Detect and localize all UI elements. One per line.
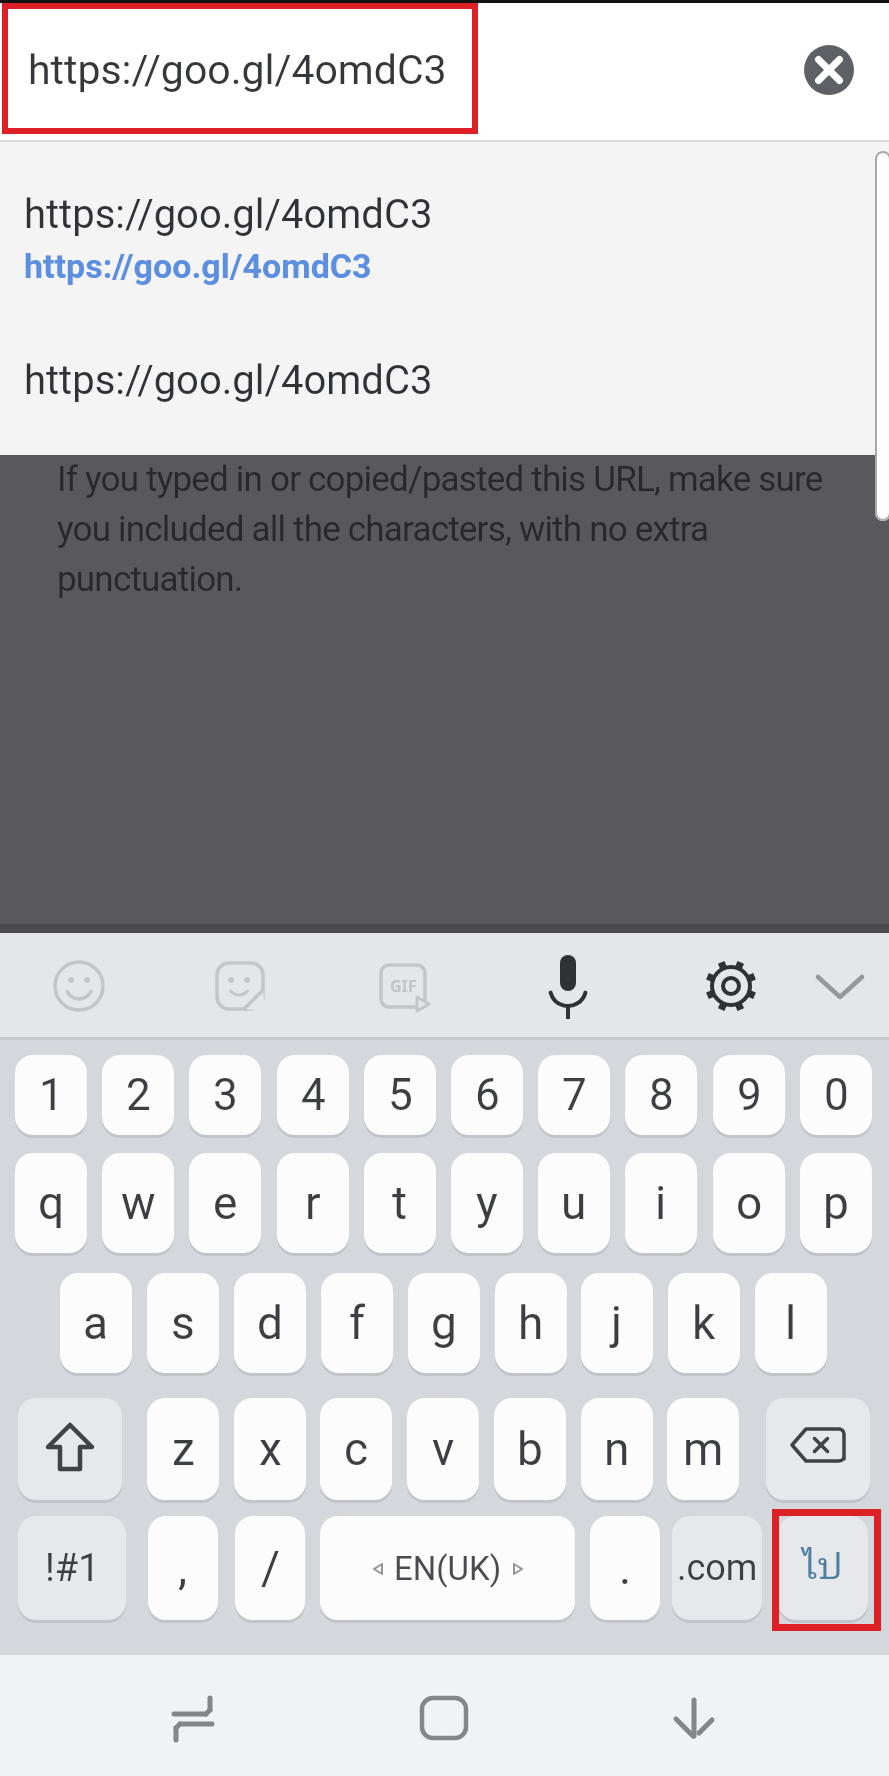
button[interactable]: j — [581, 1273, 653, 1373]
button[interactable]: p — [800, 1153, 872, 1253]
button[interactable]: 4 — [277, 1055, 349, 1135]
staticText: 9 — [737, 1069, 762, 1121]
staticText: https://goo.gl/4omdC3 — [28, 46, 447, 94]
staticText: f — [349, 1296, 365, 1350]
staticText: 3 — [213, 1069, 238, 1121]
button[interactable] — [156, 1676, 236, 1756]
button[interactable]: t — [364, 1153, 436, 1253]
button[interactable] — [691, 941, 771, 1031]
button[interactable]: 3 — [189, 1055, 261, 1135]
button[interactable]: f — [321, 1273, 393, 1373]
staticText: 1 — [39, 1069, 64, 1121]
button[interactable]: v — [407, 1398, 479, 1500]
button[interactable]: o — [713, 1153, 785, 1253]
button[interactable]: a — [60, 1273, 132, 1373]
button[interactable] — [39, 941, 119, 1031]
button[interactable]: k — [668, 1273, 740, 1373]
staticText: l — [785, 1296, 797, 1350]
staticText: a — [83, 1296, 109, 1350]
staticText: https://goo.gl/4omdC3 — [24, 357, 433, 404]
staticText: https://goo.gl/4omdC3 — [24, 191, 433, 238]
button[interactable]: m — [667, 1398, 739, 1500]
button[interactable] — [528, 941, 608, 1031]
staticText: you included all the characters, with no… — [57, 509, 709, 550]
button[interactable]: 6 — [451, 1055, 523, 1135]
staticText: c — [344, 1422, 369, 1476]
staticText: w — [121, 1176, 156, 1230]
button[interactable]: d — [234, 1273, 306, 1373]
staticText: 4 — [301, 1069, 326, 1121]
button[interactable] — [363, 941, 443, 1031]
staticText: x — [259, 1422, 282, 1476]
staticText: r — [305, 1176, 321, 1230]
button[interactable]: u — [538, 1153, 610, 1253]
button[interactable] — [766, 1398, 870, 1500]
button[interactable]: 2 — [102, 1055, 174, 1135]
staticText: .com — [677, 1547, 758, 1589]
staticText: u — [561, 1176, 587, 1230]
staticText: 8 — [649, 1069, 674, 1121]
button[interactable]: ไป — [778, 1516, 868, 1620]
staticText: n — [604, 1422, 630, 1476]
button[interactable]: . — [590, 1516, 660, 1620]
button[interactable]: !#1 — [18, 1516, 126, 1620]
staticText: d — [257, 1296, 283, 1350]
button[interactable]: c — [320, 1398, 392, 1500]
button[interactable]: n — [581, 1398, 653, 1500]
button[interactable]: , — [148, 1516, 218, 1620]
button[interactable]: 5 — [364, 1055, 436, 1135]
staticText: / — [261, 1541, 280, 1595]
button[interactable] — [404, 1676, 484, 1756]
button[interactable]: e — [189, 1153, 261, 1253]
button[interactable] — [804, 45, 854, 95]
staticText: t — [392, 1176, 408, 1230]
staticText: 0 — [824, 1069, 849, 1121]
button[interactable] — [18, 1398, 122, 1500]
staticText: s — [171, 1296, 195, 1350]
button[interactable]: q — [15, 1153, 87, 1253]
staticText: z — [172, 1422, 195, 1476]
button[interactable]: i — [625, 1153, 697, 1253]
staticText: h — [518, 1296, 544, 1350]
button[interactable]: s — [147, 1273, 219, 1373]
button[interactable]: z — [147, 1398, 219, 1500]
staticText: o — [736, 1176, 763, 1230]
staticText: q — [38, 1176, 65, 1230]
button[interactable]: 1 — [15, 1055, 87, 1135]
button[interactable]: 0 — [800, 1055, 872, 1135]
staticText: i — [655, 1176, 667, 1230]
button[interactable]: y — [451, 1153, 523, 1253]
button[interactable] — [654, 1676, 734, 1756]
button[interactable] — [800, 941, 880, 1031]
button[interactable]: b — [494, 1398, 566, 1500]
button[interactable]: EN(UK) — [320, 1516, 575, 1620]
staticText: 6 — [475, 1069, 500, 1121]
button[interactable]: g — [408, 1273, 480, 1373]
button[interactable] — [0, 150, 889, 305]
staticText: GIF — [390, 975, 417, 997]
button[interactable]: / — [235, 1516, 305, 1620]
staticText: !#1 — [45, 1546, 100, 1591]
staticText: , — [178, 1541, 188, 1595]
staticText: p — [823, 1176, 849, 1230]
button[interactable]: 9 — [713, 1055, 785, 1135]
button[interactable]: .com — [672, 1516, 762, 1620]
button[interactable]: 7 — [538, 1055, 610, 1135]
staticText: 5 — [388, 1069, 413, 1121]
staticText: y — [476, 1176, 498, 1230]
staticText: g — [431, 1296, 457, 1350]
button[interactable] — [0, 305, 889, 455]
button[interactable]: w — [102, 1153, 174, 1253]
staticText: b — [517, 1422, 543, 1476]
button[interactable]: l — [755, 1273, 827, 1373]
button[interactable]: x — [234, 1398, 306, 1500]
button[interactable] — [0, 0, 889, 140]
staticText: k — [692, 1296, 716, 1350]
button[interactable] — [200, 941, 280, 1031]
button[interactable]: r — [277, 1153, 349, 1253]
staticText: 7 — [562, 1069, 587, 1121]
button[interactable]: h — [495, 1273, 567, 1373]
staticText: v — [432, 1422, 455, 1476]
button[interactable]: 8 — [625, 1055, 697, 1135]
staticText: ไป — [803, 1537, 844, 1600]
